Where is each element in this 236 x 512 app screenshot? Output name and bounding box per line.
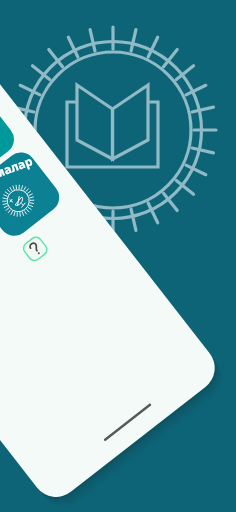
button[interactable]: App promo splash — [0, 0, 236, 512]
